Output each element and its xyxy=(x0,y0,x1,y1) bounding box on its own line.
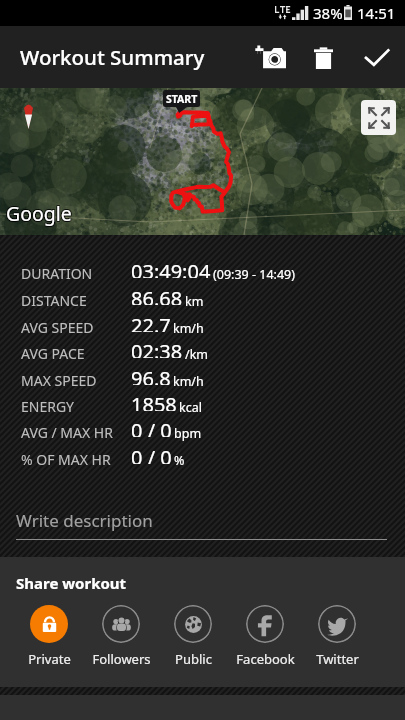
staticText: AVG PACE xyxy=(21,344,131,363)
staticText: Facebook xyxy=(236,650,295,668)
button[interactable]: Private xyxy=(13,605,85,668)
staticText: km/h xyxy=(173,373,204,390)
button[interactable]: Followers xyxy=(85,605,157,668)
staticText: 14:51 xyxy=(357,3,396,23)
staticText: Google xyxy=(7,200,73,227)
staticText: START xyxy=(166,92,198,106)
staticText: DISTANCE xyxy=(21,291,131,310)
staticText: Google xyxy=(6,200,72,227)
button[interactable]: Add photo xyxy=(244,26,297,88)
staticText: /km xyxy=(185,346,209,363)
staticText: 1858 xyxy=(131,391,177,411)
staticText: 38% xyxy=(313,3,343,23)
staticText: (09:39 - 14:49) xyxy=(213,266,295,283)
button[interactable]: Delete xyxy=(297,26,349,88)
staticText: Google xyxy=(7,199,73,226)
staticText: Google xyxy=(7,201,73,228)
button[interactable]: Save xyxy=(349,26,405,88)
button[interactable]: Facebook xyxy=(229,605,301,668)
staticText: % xyxy=(174,452,185,469)
staticText: Google xyxy=(5,201,71,228)
staticText: ENERGY xyxy=(21,397,131,416)
button[interactable]: Public xyxy=(157,605,229,668)
staticText: Private xyxy=(28,650,71,668)
button[interactable]: Expand map xyxy=(361,100,396,135)
staticText: AVG SPEED xyxy=(21,318,131,337)
staticText: kcal xyxy=(179,399,202,416)
staticText: Twitter xyxy=(316,650,359,668)
staticText: km/h xyxy=(173,320,204,337)
button[interactable]: Twitter xyxy=(301,605,373,668)
staticText: 86.68 xyxy=(131,285,183,305)
staticText: Google xyxy=(5,200,71,227)
staticText: 0 / 0 xyxy=(131,444,172,464)
staticText: Share workout xyxy=(16,573,127,593)
staticText: 0 / 0 xyxy=(131,417,172,437)
staticText: km xyxy=(185,293,204,310)
staticText: 22.7 xyxy=(131,312,171,332)
staticText: MAX SPEED xyxy=(21,371,131,390)
staticText: Google xyxy=(5,199,71,226)
staticText: bpm xyxy=(174,425,202,442)
staticText: Workout Summary xyxy=(20,43,205,71)
staticText: 96.8 xyxy=(131,365,171,385)
staticText: 03:49:04 xyxy=(131,258,211,278)
staticText: AVG / MAX HR xyxy=(21,423,131,442)
staticText: Public xyxy=(175,650,212,668)
staticText: Google xyxy=(6,199,72,226)
staticText: Followers xyxy=(92,650,151,668)
staticText: % OF MAX HR xyxy=(21,450,131,469)
staticText: 02:38 xyxy=(131,338,183,358)
staticText: Write description xyxy=(16,509,153,532)
staticText: Google xyxy=(6,201,72,228)
staticText: DURATION xyxy=(21,264,131,283)
